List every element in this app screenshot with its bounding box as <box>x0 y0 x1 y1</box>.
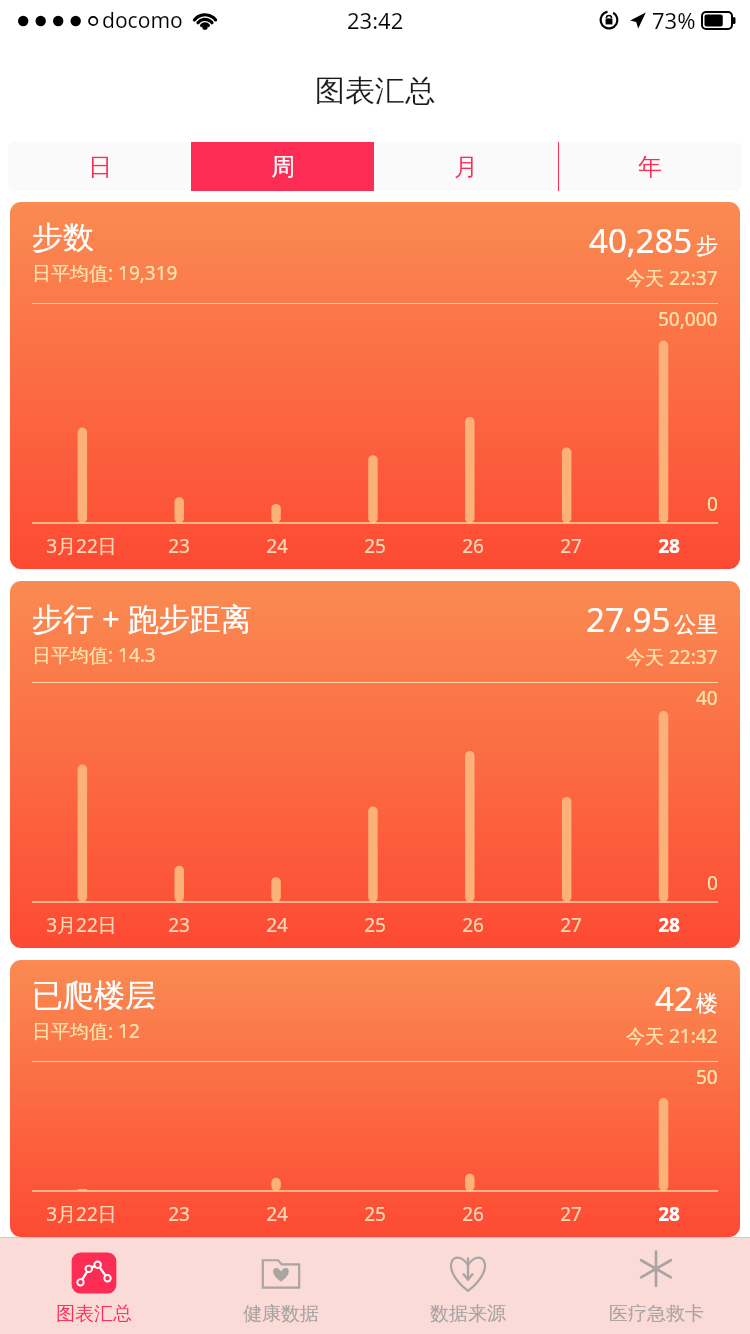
staticText: 24 <box>266 1201 288 1227</box>
staticText: 图表汇总 <box>56 1302 132 1326</box>
staticText: 23 <box>168 1201 190 1227</box>
button[interactable]: 周 <box>191 142 374 191</box>
button[interactable]: 已爬楼层 <box>10 960 740 1237</box>
staticText: 73% <box>652 5 696 35</box>
staticText: 26 <box>462 1201 484 1227</box>
staticText: 28 <box>658 1201 680 1227</box>
button[interactable]: 健康数据 <box>187 1238 374 1334</box>
staticText: 图表汇总 <box>315 72 435 110</box>
staticText: 0 <box>707 870 718 896</box>
staticText: 步数 <box>32 218 94 257</box>
staticText: 23 <box>168 533 190 559</box>
staticText: 40,285 <box>589 218 693 263</box>
staticText: 健康数据 <box>243 1302 319 1326</box>
staticText: 23:42 <box>347 5 404 35</box>
button[interactable]: 月 <box>374 142 558 191</box>
staticText: 步行 + 跑步距离 <box>32 597 252 639</box>
staticText: 28 <box>658 533 680 559</box>
staticText: 已爬楼层 <box>32 976 156 1015</box>
staticText: docomo <box>102 6 183 35</box>
staticText: 医疗急救卡 <box>609 1302 704 1326</box>
staticText: 3月22日 <box>46 912 117 938</box>
staticText: 27 <box>560 533 582 559</box>
staticText: 25 <box>364 912 386 938</box>
staticText: 25 <box>364 533 386 559</box>
button[interactable]: 日 <box>8 142 191 191</box>
staticText: 26 <box>462 533 484 559</box>
staticText: 24 <box>266 533 288 559</box>
staticText: 3月22日 <box>46 1201 117 1227</box>
staticText: 42 <box>655 976 693 1021</box>
button[interactable]: 图表汇总 <box>0 1238 187 1334</box>
staticText: 27 <box>560 1201 582 1227</box>
staticText: 日平均值: 14.3 <box>32 642 156 668</box>
staticText: 3月22日 <box>46 533 117 559</box>
staticText: 25 <box>364 1201 386 1227</box>
staticText: 27 <box>560 912 582 938</box>
staticText: 27.95 <box>586 597 671 642</box>
button[interactable]: 医疗急救卡 <box>562 1238 750 1334</box>
staticText: 楼 <box>696 990 718 1018</box>
staticText: 今天 21:42 <box>626 1023 718 1049</box>
staticText: 26 <box>462 912 484 938</box>
staticText: 0 <box>707 491 718 517</box>
button[interactable]: 步行 + 跑步距离 <box>10 581 740 948</box>
staticText: 月 <box>454 152 478 182</box>
staticText: 23 <box>168 912 190 938</box>
staticText: 周 <box>271 152 295 182</box>
staticText: 今天 22:37 <box>626 644 718 670</box>
button[interactable]: 年 <box>558 142 742 191</box>
staticText: 公里 <box>674 611 718 639</box>
staticText: 50,000 <box>658 306 718 332</box>
staticText: 日平均值: 12 <box>32 1018 140 1044</box>
staticText: 日平均值: 19,319 <box>32 260 178 286</box>
staticText: 24 <box>266 912 288 938</box>
button[interactable]: 数据来源 <box>374 1238 562 1334</box>
staticText: 日 <box>88 152 112 182</box>
staticText: 50 <box>696 1064 718 1090</box>
staticText: 28 <box>658 912 680 938</box>
staticText: 40 <box>696 685 718 711</box>
button[interactable]: 步数 <box>10 202 740 569</box>
staticText: 数据来源 <box>430 1302 506 1326</box>
staticText: 步 <box>696 232 718 260</box>
staticText: 今天 22:37 <box>626 265 718 291</box>
staticText: 年 <box>638 152 662 182</box>
